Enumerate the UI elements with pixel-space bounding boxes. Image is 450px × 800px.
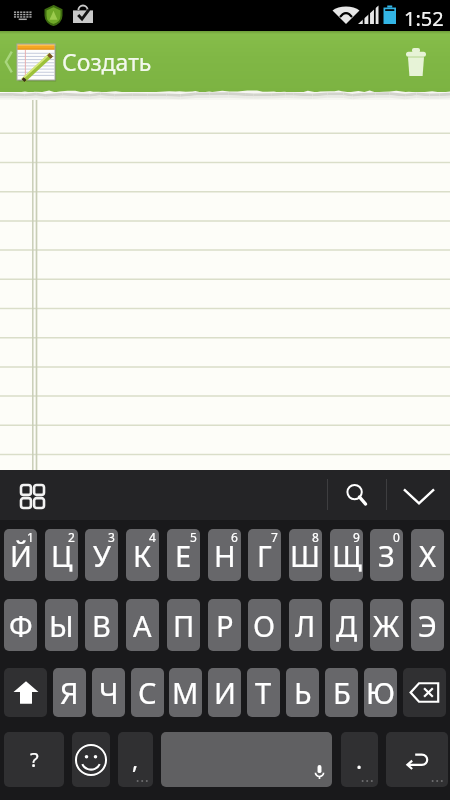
staticText: 2	[68, 529, 75, 545]
button[interactable]: Ввод	[386, 732, 448, 787]
button[interactable]: О	[248, 599, 281, 651]
button[interactable]: ?	[4, 732, 64, 787]
button[interactable]: З	[370, 529, 403, 581]
button[interactable]: Пробел	[161, 732, 332, 787]
button[interactable]: Ь	[286, 668, 319, 717]
staticText: Ш	[290, 536, 321, 575]
staticText: 1	[27, 529, 34, 545]
staticText: В	[92, 606, 111, 645]
staticText: К	[133, 536, 152, 575]
button[interactable]: Б	[325, 668, 358, 717]
button[interactable]: Л	[289, 599, 322, 651]
staticText: 1:52	[404, 5, 444, 32]
staticText: 4	[149, 529, 156, 545]
button[interactable]: В	[85, 599, 118, 651]
staticText: О	[253, 606, 276, 645]
staticText: Ь	[294, 673, 312, 712]
button[interactable]: Э	[411, 599, 444, 651]
staticText: 0	[393, 529, 400, 545]
staticText: Х	[419, 536, 437, 575]
button[interactable]: .	[341, 732, 378, 787]
button[interactable]: Ы	[45, 599, 78, 651]
button[interactable]: Скрыть клавиатуру	[387, 470, 450, 520]
button[interactable]: Н	[208, 529, 241, 581]
button[interactable]: Ч	[92, 668, 125, 717]
button[interactable]: Удалить	[394, 31, 450, 92]
button[interactable]: А	[126, 599, 159, 651]
staticText: Ю	[366, 673, 395, 712]
button[interactable]: Р	[208, 599, 241, 651]
button[interactable]: Эмодзи	[72, 732, 110, 787]
staticText: Ф	[9, 606, 33, 645]
button[interactable]: Ф	[4, 599, 37, 651]
button[interactable]: Д	[330, 599, 363, 651]
staticText: Д	[336, 606, 358, 645]
staticText: 5	[190, 529, 197, 545]
staticText: Л	[295, 606, 316, 645]
staticText: 9	[353, 529, 360, 545]
button[interactable]: Ш	[289, 529, 322, 581]
staticText: П	[173, 606, 195, 645]
button[interactable]: ,	[118, 732, 153, 787]
button[interactable]: И	[208, 668, 241, 717]
button[interactable]: Ж	[370, 599, 403, 651]
button[interactable]: Создать	[0, 31, 162, 92]
button[interactable]: Shift	[4, 668, 47, 717]
staticText: Й	[10, 536, 32, 575]
button[interactable]: Ц	[45, 529, 78, 581]
staticText: Создать	[62, 46, 152, 77]
staticText: Б	[333, 673, 351, 712]
button[interactable]: Выбор клавиатуры	[0, 470, 60, 520]
staticText: З	[378, 536, 395, 575]
button[interactable]: Т	[247, 668, 280, 717]
staticText: 8	[312, 529, 319, 545]
staticText: Ц	[51, 536, 73, 575]
staticText: 7	[271, 529, 278, 545]
button[interactable]: У	[85, 529, 118, 581]
staticText: Ж	[373, 606, 400, 645]
button[interactable]: М	[169, 668, 202, 717]
button[interactable]: Е	[167, 529, 200, 581]
staticText: Ч	[99, 673, 119, 712]
staticText: Щ	[332, 536, 362, 575]
button[interactable]: Поиск	[328, 470, 386, 520]
staticText: 6	[231, 529, 238, 545]
button[interactable]: Ю	[364, 668, 397, 717]
staticText: .	[356, 744, 363, 775]
button[interactable]: Удалить символ	[403, 668, 446, 717]
button[interactable]: Й	[4, 529, 37, 581]
staticText: ?	[30, 746, 39, 773]
staticText: Я	[60, 673, 79, 712]
button[interactable]: Г	[248, 529, 281, 581]
staticText: Р	[216, 606, 234, 645]
button[interactable]: К	[126, 529, 159, 581]
staticText: Т	[255, 673, 272, 712]
staticText: ,	[132, 744, 139, 775]
staticText: У	[93, 536, 111, 575]
staticText: Э	[418, 606, 437, 645]
button[interactable]: П	[167, 599, 200, 651]
staticText: Е	[175, 536, 192, 575]
button[interactable]: С	[131, 668, 164, 717]
button[interactable]: Щ	[330, 529, 363, 581]
button[interactable]: Я	[53, 668, 86, 717]
staticText: А	[133, 606, 152, 645]
staticText: Н	[214, 536, 236, 575]
staticText: Ы	[49, 606, 74, 645]
staticText: 3	[108, 529, 115, 545]
staticText: М	[172, 673, 199, 712]
staticText: Г	[257, 536, 272, 575]
button[interactable]: Х	[411, 529, 444, 581]
staticText: И	[214, 673, 236, 712]
staticText: С	[138, 673, 157, 712]
